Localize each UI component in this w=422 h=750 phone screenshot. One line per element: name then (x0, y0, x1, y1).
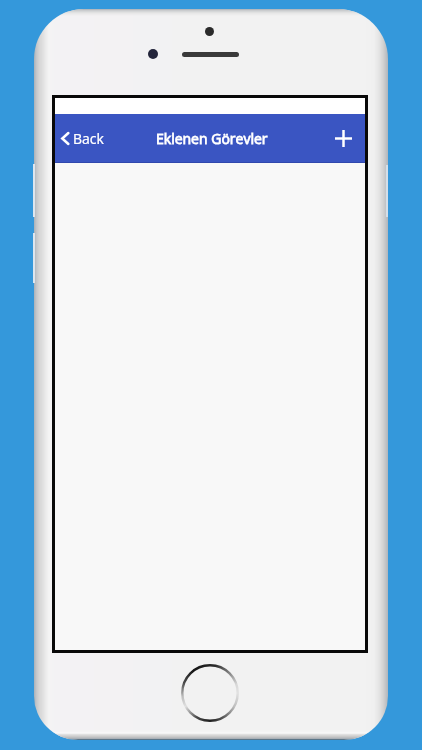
button[interactable]: Add (322, 114, 365, 163)
staticText: Eklenen Görevler (156, 129, 268, 148)
staticText: Back (73, 129, 104, 148)
button[interactable]: Back (55, 114, 114, 163)
